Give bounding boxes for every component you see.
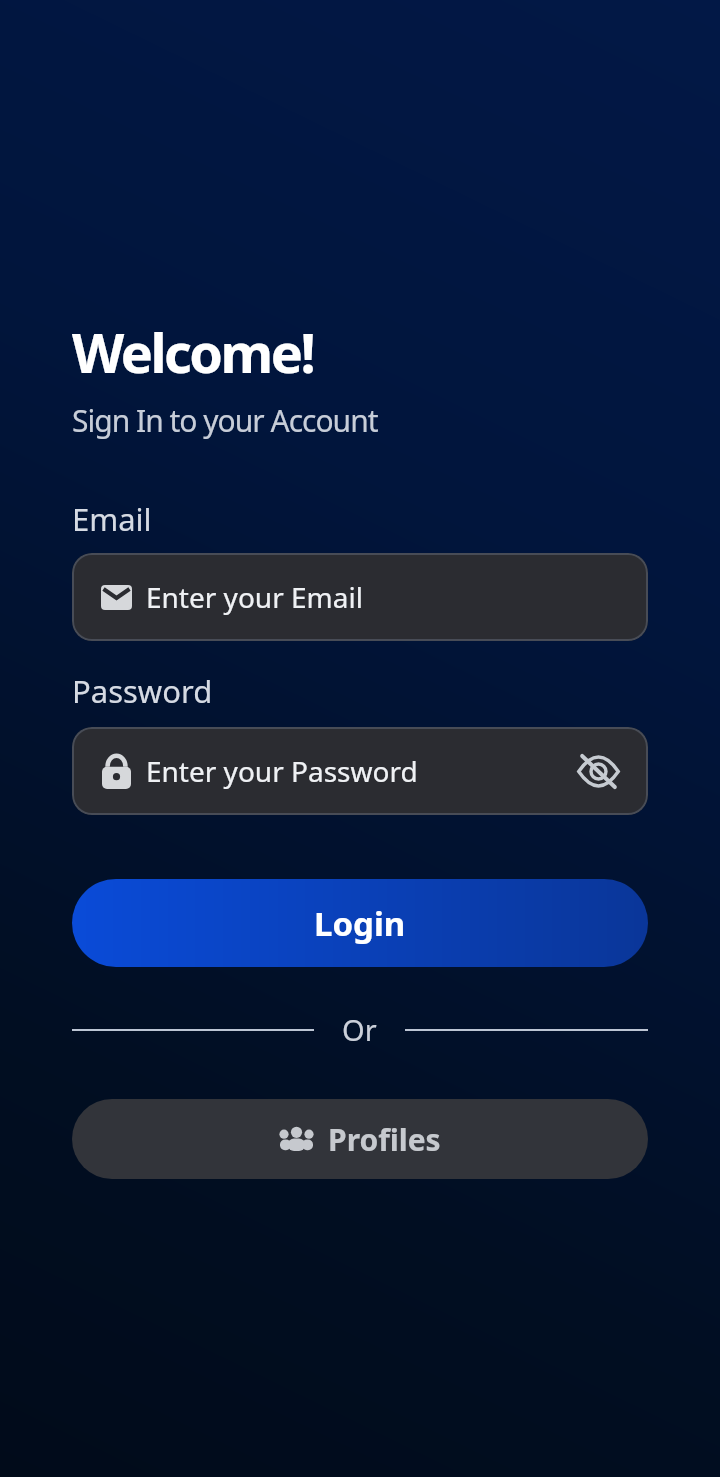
staticText: Enter your Password (146, 752, 418, 790)
button[interactable]: Enter your Email (72, 553, 648, 641)
staticText: Sign In to your Account (72, 400, 378, 441)
button[interactable]: Enter your Password (72, 727, 648, 815)
staticText: Password (72, 670, 213, 712)
staticText: Welcome! (72, 315, 314, 389)
staticText: Or (342, 1010, 377, 1049)
button[interactable]: Profiles (72, 1099, 648, 1179)
staticText: Login (314, 901, 406, 946)
staticText: Enter your Email (146, 578, 363, 616)
button[interactable]: Login (72, 879, 648, 967)
staticText: Profiles (328, 1119, 441, 1160)
staticText: Email (72, 498, 152, 540)
